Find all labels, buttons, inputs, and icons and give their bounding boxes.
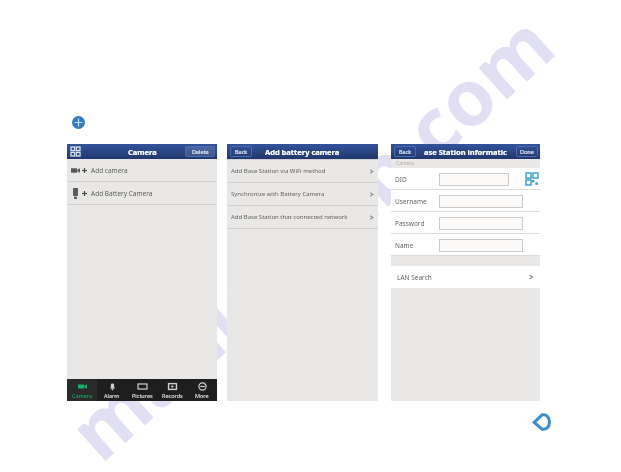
staticText: Back (399, 148, 412, 155)
staticText: Delete (192, 148, 209, 155)
button[interactable]: Pictures (127, 379, 157, 401)
staticText: LAN Search (397, 273, 528, 282)
staticText: DID (395, 175, 407, 184)
staticText: ase Station informatic (424, 147, 507, 157)
staticText: Alarm (104, 392, 120, 399)
button[interactable]: Delete (185, 146, 215, 157)
button[interactable]: More (187, 379, 217, 401)
button[interactable]: Menu (70, 146, 81, 157)
staticText: Back (235, 148, 248, 155)
staticText: Camera (72, 392, 93, 399)
button[interactable]: LAN Search (397, 266, 534, 288)
staticText: Name (395, 241, 414, 250)
staticText: Pictures (132, 392, 153, 399)
staticText: More (195, 392, 209, 399)
staticText: Add Battery Camera (91, 189, 153, 198)
staticText: manualslib.com (46, 0, 575, 472)
button[interactable]: Records (157, 379, 187, 401)
staticText: Camera (396, 160, 415, 167)
staticText: Add Base Station via WiFi method (231, 167, 369, 175)
button[interactable]: Scan QR code (526, 173, 538, 185)
staticText: Add battery camera (265, 147, 340, 157)
button[interactable]: Back (394, 146, 416, 157)
button[interactable]: Add Base Station that connected network (231, 206, 374, 228)
staticText: Add Base Station that connected network (231, 213, 369, 221)
button[interactable]: Add camera (67, 159, 217, 181)
staticText: Records (162, 392, 183, 399)
button[interactable]: Synchronize with Battery Camera (231, 183, 374, 205)
button[interactable]: Back (230, 146, 252, 157)
staticText: Synchronize with Battery Camera (231, 190, 369, 198)
staticText: Done (520, 148, 534, 155)
button[interactable]: Add Battery Camera (67, 182, 217, 204)
button[interactable]: Add Base Station via WiFi method (231, 160, 374, 182)
button[interactable]: Alarm (97, 379, 127, 401)
staticText: Camera (128, 147, 157, 157)
button[interactable]: Add (72, 116, 85, 129)
button[interactable]: Done (516, 146, 538, 157)
button[interactable]: Camera (67, 379, 97, 401)
staticText: Username (395, 197, 427, 206)
staticText: Password (395, 219, 425, 228)
staticText: Add camera (91, 166, 128, 175)
